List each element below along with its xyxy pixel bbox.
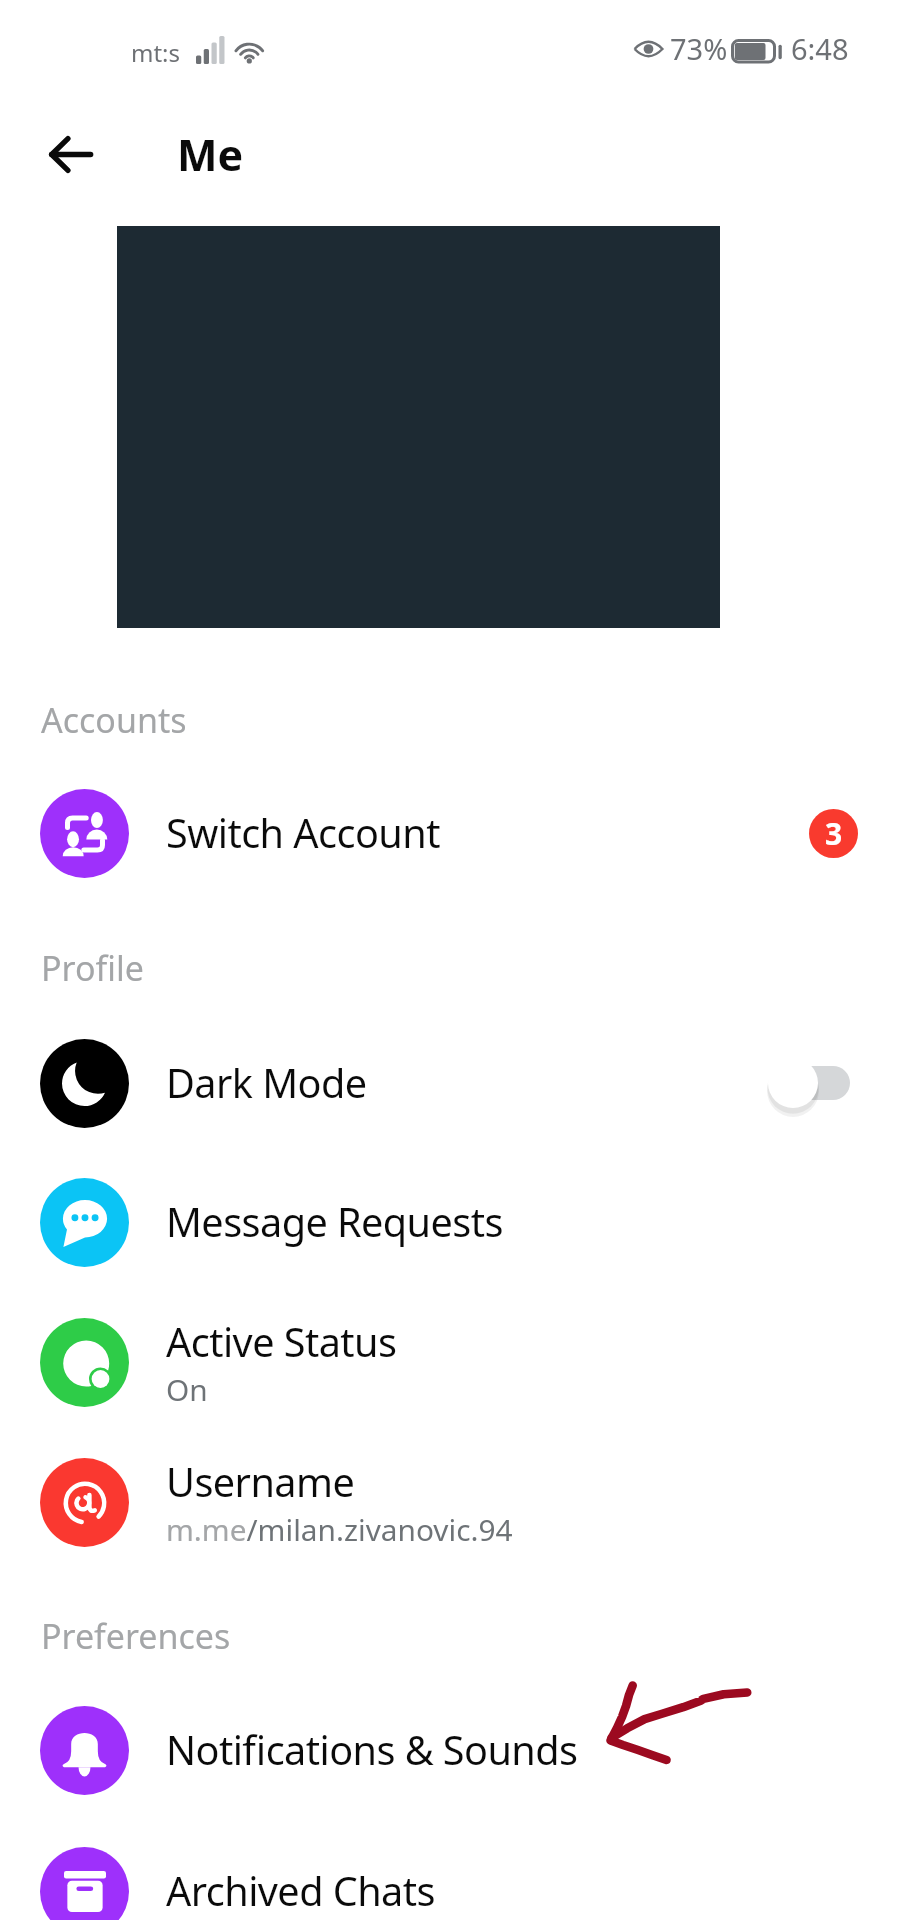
staticText: 6:48 — [791, 29, 849, 61]
button[interactable]: Message Requests — [0, 1152, 898, 1292]
button[interactable]: Archived Chats — [0, 1821, 898, 1920]
staticText: Active Status — [166, 1315, 397, 1369]
staticText: mt:s — [131, 36, 181, 68]
staticText: Me — [177, 125, 244, 173]
button[interactable]: Dark Mode — [0, 1013, 898, 1153]
staticText: Notifications & Sounds — [166, 1723, 578, 1777]
staticText: On — [166, 1369, 208, 1410]
button[interactable]: Active Status — [0, 1292, 898, 1432]
staticText: Switch Account — [166, 806, 440, 860]
staticText: 73% — [670, 29, 728, 61]
staticText: 3 — [825, 813, 843, 854]
button[interactable]: Back — [25, 109, 115, 199]
staticText: Profile — [41, 945, 144, 991]
staticText: Username — [166, 1455, 355, 1509]
button[interactable]: Dark mode toggle — [766, 1053, 850, 1113]
staticText: Dark Mode — [166, 1056, 367, 1110]
button[interactable]: Switch Account — [0, 763, 898, 903]
button[interactable]: Username — [0, 1432, 898, 1572]
button[interactable]: Notifications & Sounds — [0, 1680, 898, 1820]
staticText: Message Requests — [166, 1195, 503, 1249]
staticText: m.me/milan.zivanovic.94 — [166, 1509, 513, 1550]
staticText: Preferences — [41, 1613, 231, 1659]
staticText: Accounts — [41, 697, 187, 743]
staticText: Archived Chats — [166, 1864, 435, 1918]
